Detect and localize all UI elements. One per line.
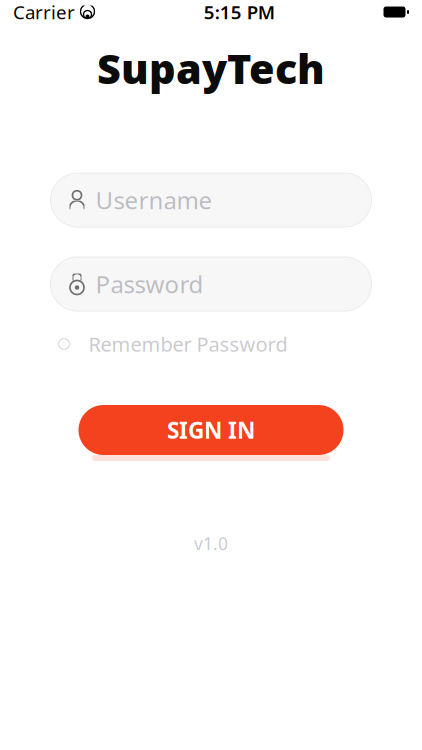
staticText: SIGN IN	[167, 415, 255, 445]
staticText: Password	[95, 268, 203, 300]
button[interactable]: Password	[50, 257, 371, 311]
staticText: SupayTech	[97, 41, 325, 95]
button[interactable]: Remember Password	[50, 327, 371, 361]
staticText: Username	[95, 184, 212, 216]
staticText: Carrier	[13, 0, 75, 24]
button[interactable]: Username	[50, 173, 371, 227]
staticText: 5:15 PM	[204, 0, 275, 24]
staticText: v1.0	[194, 532, 228, 555]
staticText: Remember Password	[88, 331, 287, 357]
button[interactable]: SIGN IN	[78, 405, 343, 455]
